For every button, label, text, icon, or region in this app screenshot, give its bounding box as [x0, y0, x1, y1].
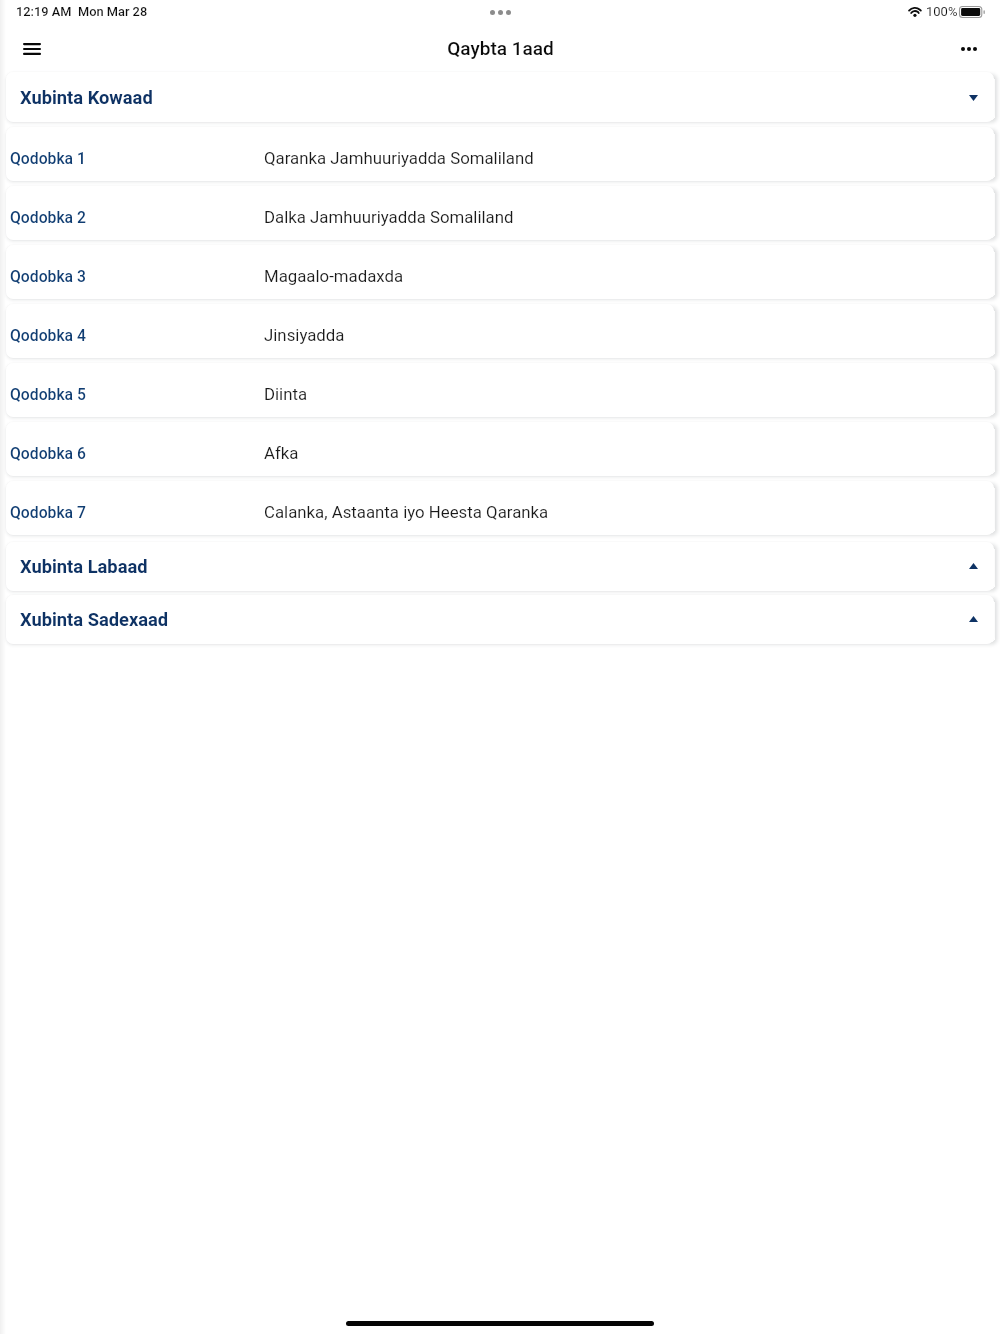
staticText: Qodobka 2	[10, 208, 264, 226]
button[interactable]: Menu	[13, 30, 50, 67]
button[interactable]: Qodobka 2	[6, 186, 994, 240]
staticText: Qodobka 5	[10, 385, 264, 403]
staticText: Magaalo-madaxda	[264, 266, 404, 286]
staticText: Qaranka Jamhuuriyadda Somaliland	[264, 148, 534, 168]
button[interactable]: Qodobka 4	[6, 304, 994, 358]
button[interactable]: Xubinta Kowaad	[6, 72, 994, 122]
staticText: 100%	[926, 4, 958, 19]
button[interactable]: More options	[950, 30, 988, 68]
staticText: Qodobka 6	[10, 444, 264, 462]
staticText: Diinta	[264, 384, 308, 404]
staticText: Jinsiyadda	[264, 325, 345, 345]
staticText: Xubinta Sadexaad	[20, 609, 169, 630]
button[interactable]: Qodobka 5	[6, 363, 994, 417]
staticText: Qodobka 4	[10, 326, 264, 344]
staticText: Xubinta Kowaad	[20, 87, 153, 108]
staticText: Mon Mar 28	[78, 4, 148, 19]
button[interactable]: Qodobka 3	[6, 245, 994, 299]
button[interactable]: Qodobka 1	[6, 127, 994, 181]
staticText: Xubinta Labaad	[20, 556, 148, 577]
staticText: Qodobka 3	[10, 267, 264, 285]
button[interactable]: Xubinta Labaad	[6, 542, 994, 591]
button[interactable]: Xubinta Sadexaad	[6, 595, 994, 644]
staticText: 12:19 AM	[16, 4, 72, 19]
staticText: Qodobka 1	[10, 149, 264, 167]
button[interactable]: Qodobka 7	[6, 481, 994, 535]
staticText: Calanka, Astaanta iyo Heesta Qaranka	[264, 502, 549, 522]
staticText: Dalka Jamhuuriyadda Somaliland	[264, 207, 514, 227]
staticText: Qaybta 1aad	[447, 37, 554, 59]
staticText: Qodobka 7	[10, 503, 264, 521]
button[interactable]: Qodobka 6	[6, 422, 994, 476]
staticText: Afka	[264, 443, 299, 463]
